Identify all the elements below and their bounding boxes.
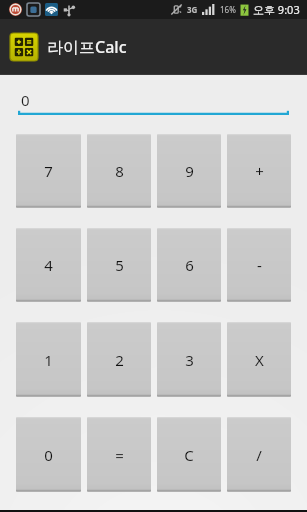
button[interactable]: 7 (16, 134, 81, 208)
button[interactable]: + (227, 134, 291, 208)
button[interactable]: X (227, 322, 291, 397)
staticText: / (256, 445, 262, 465)
button[interactable]: / (227, 417, 291, 492)
button[interactable]: - (227, 228, 291, 302)
button[interactable]: 0 (16, 417, 81, 492)
staticText: 1 (44, 350, 53, 370)
staticText: 8 (115, 161, 124, 181)
button[interactable]: 4 (16, 228, 81, 302)
staticText: 0 (44, 445, 53, 465)
staticText: 5 (115, 255, 124, 275)
staticText: 라이프Calc (47, 36, 127, 58)
staticText: X (255, 350, 264, 370)
staticText: 6 (185, 255, 194, 275)
staticText: 2 (115, 350, 124, 370)
staticText: 4 (44, 255, 53, 275)
staticText: = (115, 445, 124, 465)
staticText: - (257, 255, 262, 275)
button[interactable]: 6 (157, 228, 221, 302)
staticText: C (184, 445, 194, 465)
staticText: + (255, 161, 264, 181)
staticText: 3 (185, 350, 194, 370)
staticText: 0 (21, 90, 30, 110)
button[interactable]: = (87, 417, 151, 492)
button[interactable]: 2 (87, 322, 151, 397)
staticText: 16% (220, 4, 236, 15)
button[interactable]: 9 (157, 134, 221, 208)
staticText: 7 (44, 161, 53, 181)
button[interactable]: 8 (87, 134, 151, 208)
button[interactable]: 0 (18, 89, 289, 116)
button[interactable]: 3 (157, 322, 221, 397)
button[interactable]: 5 (87, 228, 151, 302)
staticText: 3G (187, 4, 198, 15)
staticText: 오후 9:03 (253, 2, 300, 17)
button[interactable]: 1 (16, 322, 81, 397)
staticText: 9 (185, 161, 194, 181)
button[interactable]: C (157, 417, 221, 492)
